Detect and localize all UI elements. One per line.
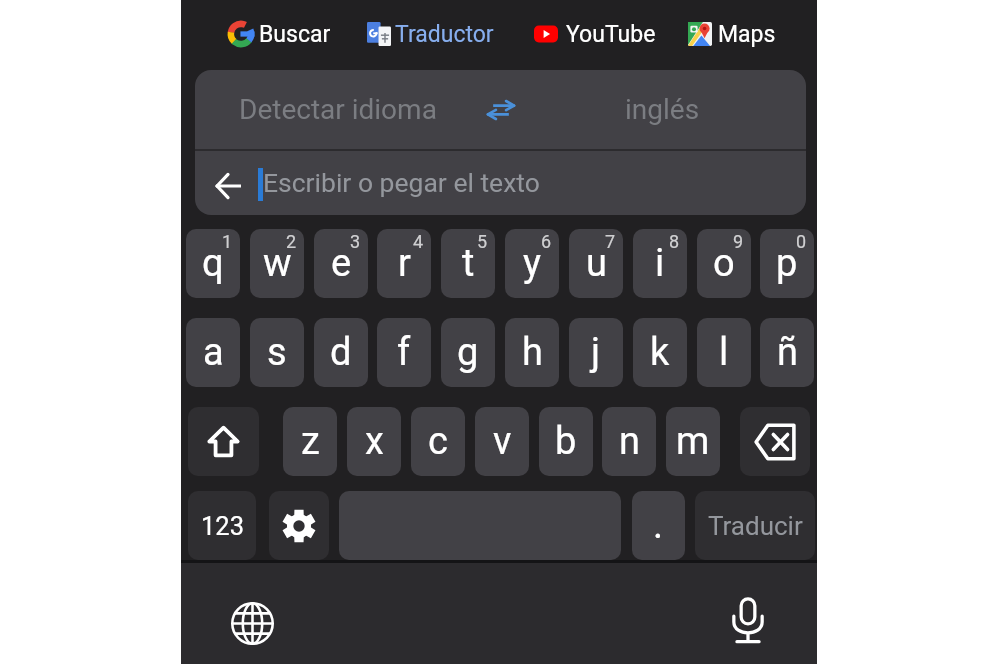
button[interactable]: Settings	[269, 491, 329, 560]
staticText: w	[263, 241, 292, 286]
button[interactable]: a	[186, 318, 240, 387]
button[interactable]: Voice input	[716, 589, 780, 653]
button[interactable]: YouTube	[526, 14, 664, 54]
button[interactable]: Traductor	[359, 14, 502, 54]
button[interactable]: x	[347, 407, 401, 476]
button[interactable]: d	[314, 318, 368, 387]
staticText: 0	[796, 231, 807, 252]
staticText: ñ	[777, 330, 798, 375]
staticText: Buscar	[259, 21, 331, 48]
staticText: 2	[286, 231, 297, 252]
button[interactable]: 123	[188, 491, 256, 560]
button[interactable]: e	[314, 229, 368, 298]
staticText: Traductor	[395, 21, 494, 48]
staticText: 8	[669, 231, 680, 252]
button[interactable]: r	[377, 229, 431, 298]
staticText: h	[522, 330, 543, 375]
button[interactable]: Shift	[188, 407, 259, 476]
staticText: o	[713, 241, 735, 286]
staticText: t	[462, 241, 475, 286]
staticText: inglés	[625, 93, 700, 126]
staticText: v	[493, 419, 512, 464]
staticText: b	[555, 419, 577, 464]
button[interactable]: s	[250, 318, 304, 387]
button[interactable]: n	[602, 407, 656, 476]
staticText: p	[776, 241, 798, 286]
staticText: 3	[350, 231, 361, 252]
staticText: k	[650, 330, 670, 375]
button[interactable]: w	[250, 229, 304, 298]
button[interactable]: p	[760, 229, 814, 298]
staticText: u	[586, 241, 607, 286]
button[interactable]: v	[475, 407, 529, 476]
staticText: 1	[222, 231, 233, 252]
staticText: m	[676, 419, 710, 464]
button[interactable]: f	[377, 318, 431, 387]
button[interactable]: y	[505, 229, 559, 298]
staticText: a	[203, 330, 224, 375]
button[interactable]: t	[441, 229, 495, 298]
staticText: YouTube	[566, 21, 656, 48]
staticText: y	[523, 241, 541, 286]
button[interactable]: Traducir	[695, 491, 815, 560]
button[interactable]: Detectar idioma	[195, 70, 806, 149]
button[interactable]: Backspace	[740, 407, 810, 476]
staticText: q	[202, 241, 224, 286]
button[interactable]: Change keyboard language	[220, 591, 284, 655]
staticText: Detectar idioma	[239, 93, 437, 126]
button[interactable]: i	[633, 229, 687, 298]
staticText: 4	[413, 231, 424, 252]
button[interactable]: m	[666, 407, 720, 476]
staticText: c	[428, 419, 448, 464]
button[interactable]: b	[539, 407, 593, 476]
staticText: n	[619, 419, 640, 464]
button[interactable]: .	[632, 491, 685, 560]
button[interactable]: Buscar	[219, 14, 339, 54]
staticText: Escribir o pegar el texto	[263, 167, 540, 198]
button[interactable]: k	[633, 318, 687, 387]
staticText: x	[365, 419, 384, 464]
staticText: 5	[477, 231, 488, 252]
staticText: s	[267, 330, 287, 375]
button[interactable]: ñ	[760, 318, 814, 387]
staticText: 6	[541, 231, 552, 252]
staticText: f	[397, 330, 411, 375]
staticText: 9	[733, 231, 744, 252]
button[interactable]: Escribir o pegar el texto	[195, 151, 806, 215]
staticText: l	[719, 330, 729, 375]
staticText: .	[653, 503, 664, 548]
button[interactable]: j	[569, 318, 623, 387]
staticText: 123	[201, 511, 244, 541]
button[interactable]: g	[441, 318, 495, 387]
staticText: g	[457, 330, 479, 375]
staticText: i	[655, 241, 665, 286]
staticText: r	[398, 241, 411, 286]
button[interactable]: Maps	[680, 14, 784, 54]
staticText: d	[330, 330, 352, 375]
button[interactable]: c	[411, 407, 465, 476]
staticText: j	[591, 330, 601, 375]
staticText: e	[331, 241, 352, 286]
button[interactable]: l	[697, 318, 751, 387]
button[interactable]: u	[569, 229, 623, 298]
button[interactable]: h	[505, 318, 559, 387]
staticText: Traducir	[708, 511, 803, 541]
staticText: Maps	[718, 21, 776, 48]
button[interactable]: q	[186, 229, 240, 298]
staticText: z	[301, 419, 320, 464]
staticText: 7	[605, 231, 616, 252]
button[interactable]: z	[283, 407, 337, 476]
button[interactable]: o	[697, 229, 751, 298]
